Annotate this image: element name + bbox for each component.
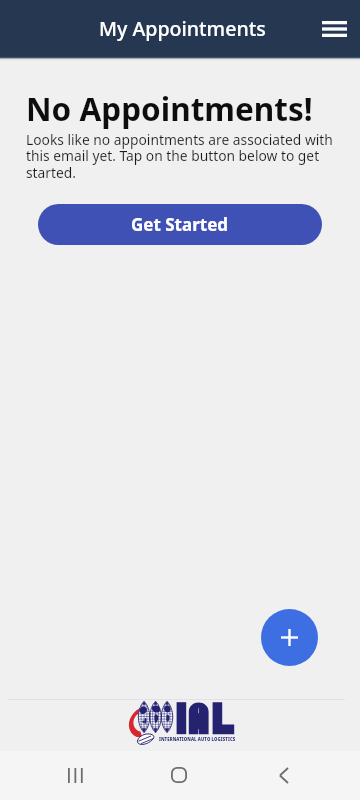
staticText: My Appointments bbox=[99, 15, 266, 42]
button[interactable]: Home bbox=[155, 751, 203, 799]
button[interactable]: Add appointment bbox=[261, 609, 318, 666]
staticText: Get Started bbox=[131, 213, 229, 236]
button[interactable]: Get Started bbox=[38, 204, 322, 245]
button[interactable]: Recent apps bbox=[51, 751, 99, 799]
staticText: INTERNATIONAL AUTO LOGISTICS bbox=[159, 736, 236, 742]
button[interactable]: Back bbox=[259, 751, 307, 799]
staticText: No Appointments! bbox=[26, 87, 313, 130]
button[interactable]: Open navigation menu bbox=[313, 8, 355, 50]
staticText: Looks like no appointments are associate… bbox=[26, 130, 336, 182]
